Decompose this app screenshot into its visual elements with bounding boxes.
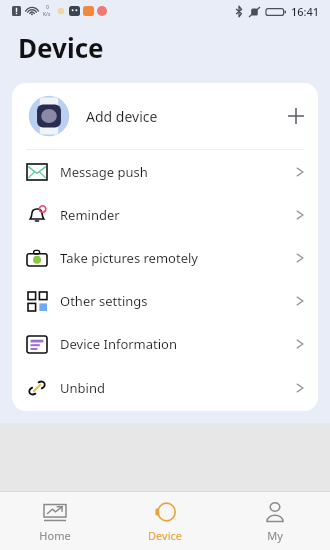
button[interactable]: Reminder — [12, 193, 318, 236]
staticText: Message push — [60, 163, 148, 181]
staticText: Device — [18, 30, 104, 65]
staticText: Add device — [86, 107, 158, 126]
button[interactable]: Unbind — [12, 365, 318, 411]
staticText: K/s — [43, 11, 51, 18]
button[interactable]: Message push — [12, 150, 318, 193]
staticText: My — [267, 528, 283, 543]
button[interactable]: Add device — [12, 83, 318, 149]
button[interactable]: Device — [110, 492, 220, 550]
button[interactable]: Take pictures remotely — [12, 236, 318, 279]
button[interactable]: Other settings — [12, 279, 318, 322]
button[interactable]: Device Information — [12, 322, 318, 365]
staticText: 0 — [46, 4, 49, 11]
staticText: Take pictures remotely — [60, 249, 198, 267]
staticText: Device — [148, 528, 182, 543]
staticText: Home — [39, 528, 71, 543]
staticText: Unbind — [60, 379, 105, 397]
button[interactable]: Home — [0, 492, 110, 550]
staticText: Other settings — [60, 292, 148, 310]
staticText: Device Information — [60, 335, 178, 353]
staticText: 16:41 — [291, 4, 320, 19]
staticText: Reminder — [60, 206, 120, 224]
button[interactable]: My — [220, 492, 330, 550]
